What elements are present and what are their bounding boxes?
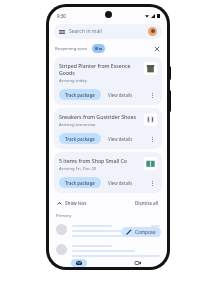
- staticText: Dismiss all: [135, 200, 159, 206]
- button[interactable]: [56, 244, 160, 257]
- button[interactable]: [56, 224, 160, 237]
- button[interactable]: Track package: [59, 177, 101, 188]
- staticText: Primary: [56, 213, 72, 219]
- button[interactable]: Sneakers from Gustrider Shoes: [54, 108, 162, 149]
- button[interactable]: Meet: [108, 257, 167, 267]
- button[interactable]: View details: [106, 178, 135, 188]
- staticText: Track package: [65, 180, 95, 186]
- staticText: Search in mail: [69, 28, 102, 35]
- button[interactable]: Show less: [56, 199, 88, 207]
- button[interactable]: View details: [106, 90, 135, 100]
- button[interactable]: 5 items from Shop Small Co: [54, 152, 162, 193]
- button[interactable]: Compose: [121, 227, 161, 237]
- staticText: 5 items from Shop Small Co: [59, 157, 128, 164]
- button[interactable]: Mail: [49, 257, 108, 267]
- button[interactable]: More options: [147, 134, 157, 144]
- staticText: 9:30: [57, 13, 66, 19]
- button[interactable]: Dismiss all: [134, 199, 160, 207]
- staticText: Track package: [65, 136, 95, 142]
- button[interactable]: Dismiss: [153, 45, 161, 53]
- button[interactable]: Search in mail: [54, 24, 162, 39]
- button[interactable]: Track package: [59, 89, 101, 100]
- button[interactable]: More options: [147, 90, 157, 100]
- staticText: View details: [108, 180, 133, 186]
- staticText: Reopening soon: [55, 46, 88, 52]
- button[interactable]: [92, 44, 105, 53]
- button[interactable]: Track package: [59, 133, 101, 144]
- button[interactable]: More options: [147, 178, 157, 188]
- staticText: Arriving tomorrow: [59, 122, 96, 128]
- staticText: Arriving today: [59, 78, 87, 84]
- staticText: Sneakers from Gustrider Shoes: [59, 113, 137, 120]
- button[interactable]: Account: [148, 27, 157, 36]
- button[interactable]: Striped Planter from Essence Goods: [54, 57, 162, 105]
- staticText: Arriving Fri, Dec 20: [59, 166, 97, 172]
- staticText: Show less: [65, 200, 87, 206]
- staticText: View details: [108, 136, 133, 142]
- staticText: View details: [108, 92, 133, 98]
- button[interactable]: View details: [106, 134, 135, 144]
- staticText: Compose: [135, 229, 156, 235]
- staticText: Track package: [65, 92, 95, 98]
- staticText: Striped Planter from Essence Goods: [59, 62, 140, 76]
